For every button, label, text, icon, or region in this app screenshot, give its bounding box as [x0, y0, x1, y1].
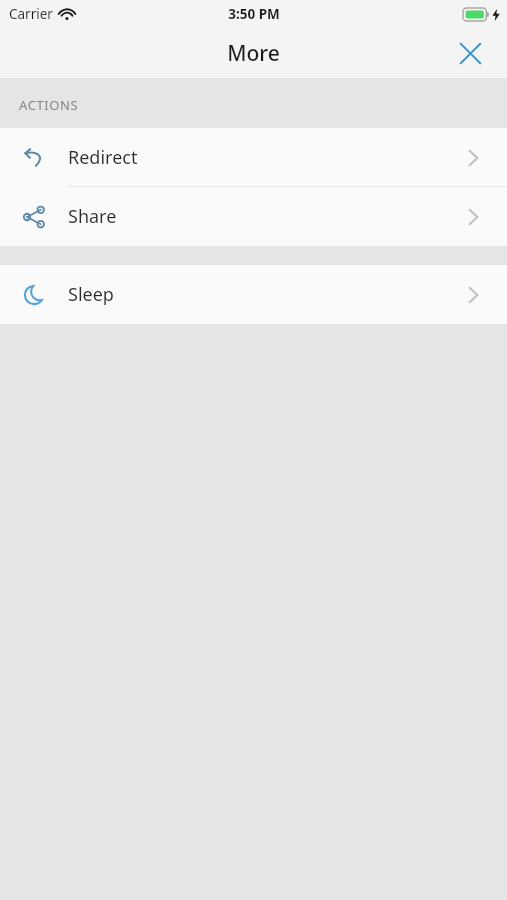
- button[interactable]: Sleep: [0, 265, 507, 324]
- staticText: Sleep: [68, 282, 114, 307]
- staticText: Share: [68, 204, 117, 229]
- staticText: Carrier: [9, 5, 53, 23]
- button[interactable]: Close: [453, 36, 487, 70]
- staticText: ACTIONS: [19, 96, 79, 114]
- staticText: Redirect: [68, 145, 138, 170]
- button[interactable]: Share: [0, 187, 507, 246]
- staticText: More: [227, 39, 280, 68]
- button[interactable]: Redirect: [0, 128, 507, 187]
- staticText: 3:50 PM: [228, 5, 280, 23]
